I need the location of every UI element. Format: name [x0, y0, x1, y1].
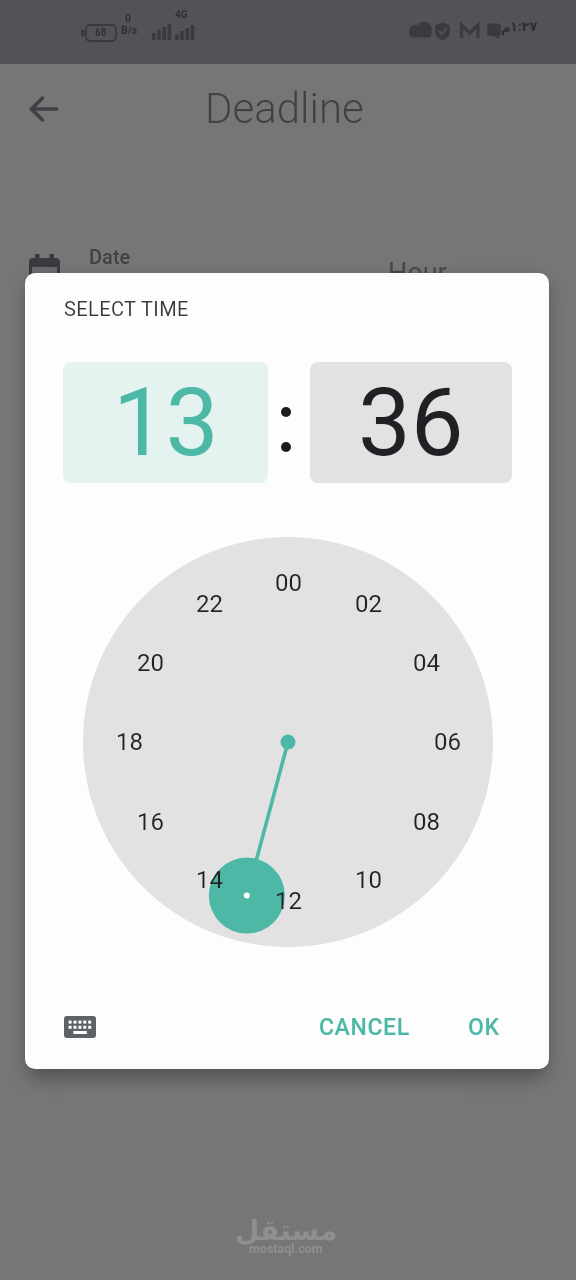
staticText: 16: [137, 808, 164, 836]
button[interactable]: 12: [258, 884, 318, 918]
staticText: مستقل: [235, 1214, 338, 1247]
staticText: م: [501, 20, 511, 35]
button[interactable]: 14: [179, 863, 239, 897]
staticText: 14: [196, 866, 223, 894]
button[interactable]: 36: [310, 362, 512, 483]
staticText: 4G: [175, 9, 188, 21]
staticText: 08: [413, 808, 440, 836]
staticText: Hour: [388, 257, 447, 289]
staticText: mostaql.com: [249, 1241, 323, 1256]
button[interactable]: 02: [338, 587, 398, 621]
button[interactable]: 16: [120, 805, 180, 839]
staticText: 13: [113, 368, 219, 478]
staticText: 22: [196, 590, 223, 618]
staticText: OK: [468, 1014, 500, 1041]
staticText: 12: [275, 887, 302, 915]
staticText: B/s: [121, 24, 138, 36]
staticText: 18: [116, 728, 143, 756]
staticText: 36: [358, 368, 464, 478]
button[interactable]: 18: [99, 725, 159, 759]
button[interactable]: 20: [120, 646, 180, 680]
staticText: 02: [355, 590, 382, 618]
staticText: SELECT TIME: [64, 297, 189, 320]
button[interactable]: 08: [396, 805, 456, 839]
staticText: 20: [137, 649, 164, 677]
button[interactable]: CANCEL: [299, 1003, 429, 1051]
staticText: 00: [275, 569, 302, 597]
staticText: 0: [125, 12, 132, 24]
button[interactable]: 06: [417, 725, 477, 759]
staticText: 04: [413, 649, 440, 677]
button[interactable]: [22, 87, 66, 131]
button[interactable]: 00: [258, 566, 318, 600]
button[interactable]: [52, 1004, 108, 1050]
button[interactable]: 10: [338, 863, 398, 897]
staticText: Date: [89, 245, 131, 268]
staticText: Deadline: [205, 84, 364, 133]
staticText: 68: [95, 27, 107, 39]
button[interactable]: 13: [63, 362, 268, 483]
button[interactable]: OK: [449, 1003, 519, 1051]
staticText: CANCEL: [319, 1014, 410, 1041]
button[interactable]: 22: [179, 587, 239, 621]
button[interactable]: 04: [396, 646, 456, 680]
staticText: 10: [355, 866, 382, 894]
staticText: 06: [434, 728, 461, 756]
staticText: ١:٣٧: [510, 17, 538, 35]
